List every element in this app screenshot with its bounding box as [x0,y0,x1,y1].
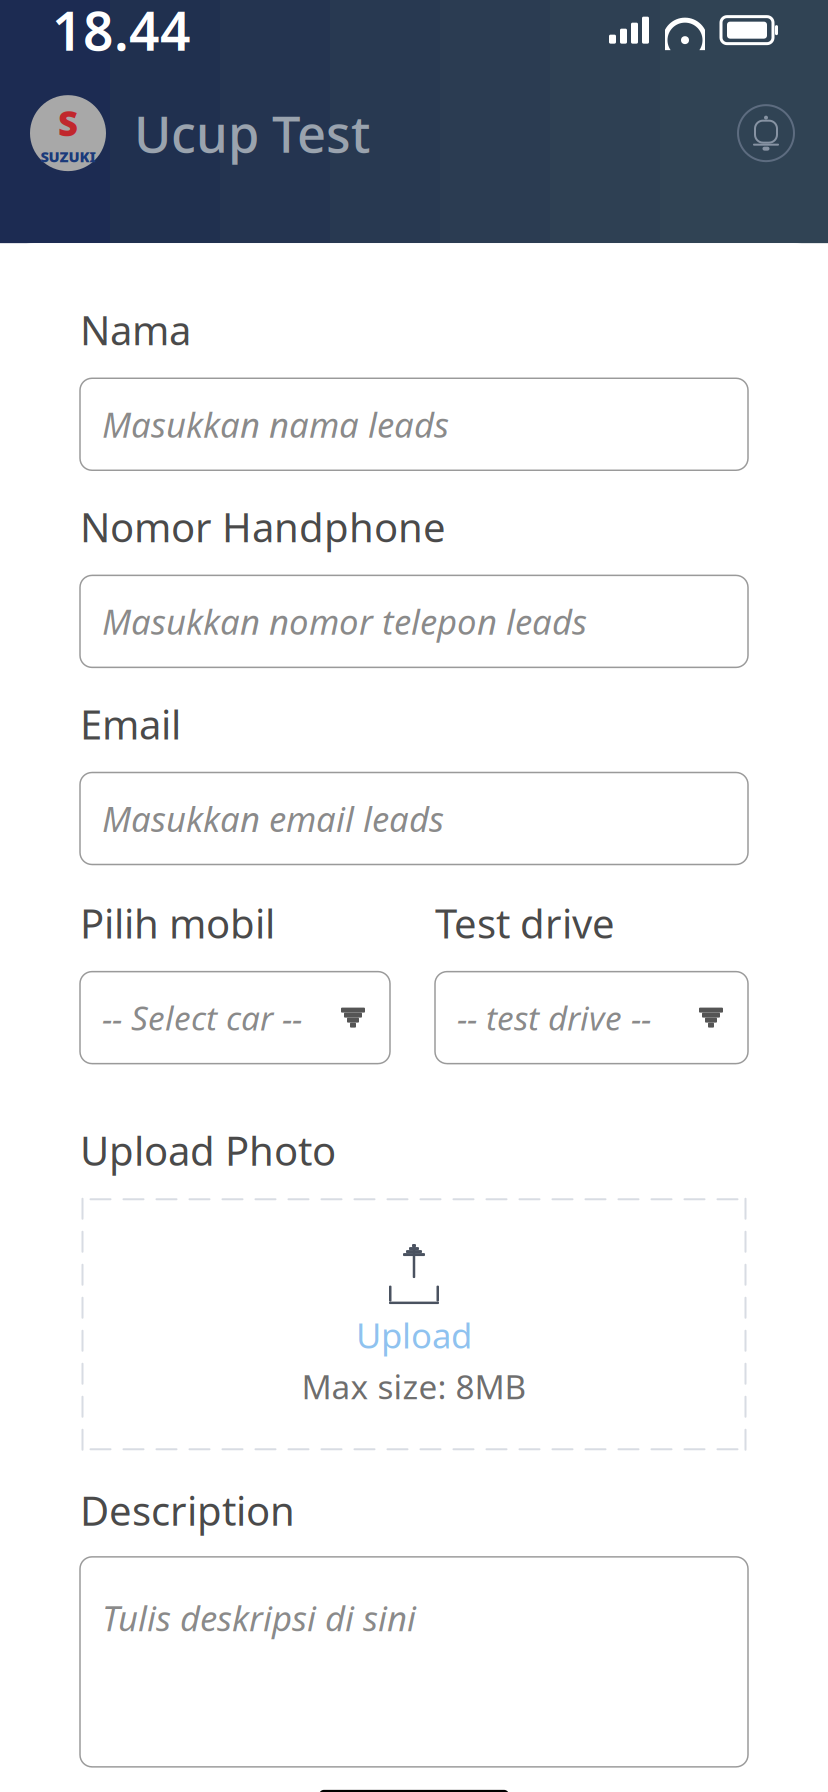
staticText: -- Select car -- [102,995,302,1040]
button[interactable]: Upload [80,1197,748,1452]
staticText: Test drive [435,896,615,950]
staticText: Upload Photo [80,1124,336,1177]
staticText: Nama [80,303,191,356]
staticText: Tulis deskripsi di sini [102,1595,416,1641]
staticText: Masukkan email leads [102,795,444,841]
staticText: Description [80,1484,295,1537]
staticText: Ucup Test [134,99,370,167]
button[interactable]: -- test drive -- [435,972,748,1064]
staticText: -- test drive -- [457,995,651,1040]
staticText: S [58,100,78,146]
staticText: Max size: 8MB [301,1364,526,1408]
button[interactable]: Masukkan email leads [80,772,748,864]
staticText: Upload [356,1312,472,1358]
staticText: 18.44 [52,0,191,65]
button[interactable]: -- Select car -- [80,972,390,1064]
button[interactable]: Notifications [736,103,796,163]
staticText: SUZUKI [40,147,95,166]
staticText: Email [80,697,181,750]
staticText: Pilih mobil [80,896,275,950]
button[interactable]: Tulis deskripsi di sini [80,1557,748,1767]
button[interactable]: Masukkan nama leads [80,378,748,470]
button[interactable]: Masukkan nomor telepon leads [80,575,748,667]
staticText: Masukkan nomor telepon leads [102,598,587,644]
staticText: Nomor Handphone [80,500,446,553]
staticText: Masukkan nama leads [102,401,449,447]
